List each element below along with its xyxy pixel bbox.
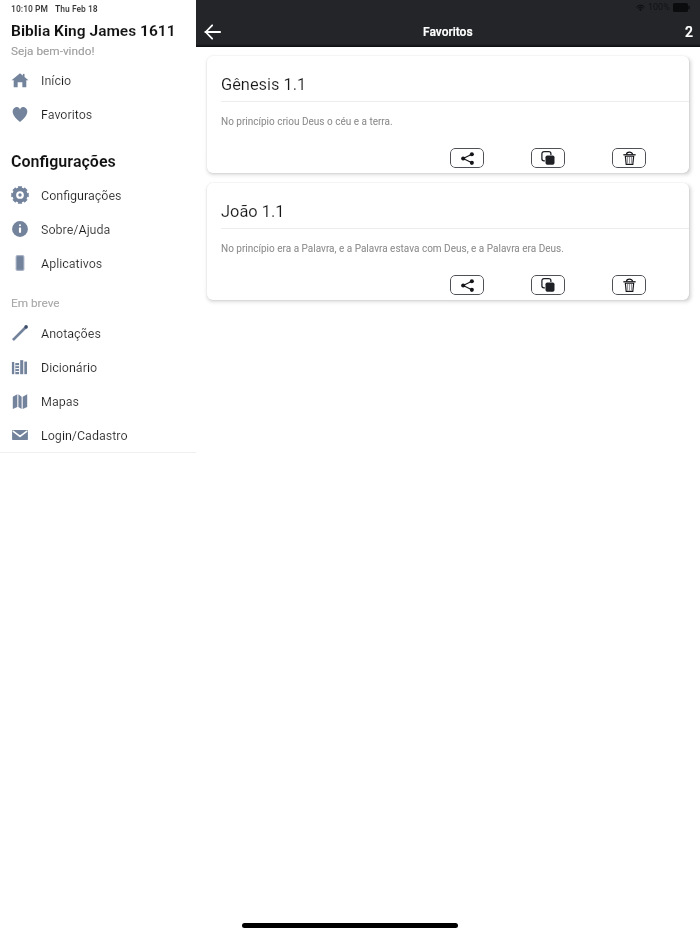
staticText: 10:10 PM xyxy=(11,4,48,14)
staticText: Anotações xyxy=(41,326,101,341)
staticText: 100% xyxy=(648,2,670,13)
staticText: No princípio criou Deus o céu e a terra. xyxy=(221,116,393,128)
button[interactable]: Sobre/Ajuda xyxy=(0,212,196,246)
staticText: Favoritos xyxy=(423,25,473,39)
button[interactable]: Login/Cadastro xyxy=(0,418,196,452)
staticText: Mapas xyxy=(41,394,79,409)
button[interactable]: Anotações xyxy=(0,316,196,350)
button[interactable]: Mapas xyxy=(0,384,196,418)
staticText: Início xyxy=(41,73,72,88)
button[interactable]: Configurações xyxy=(0,178,196,212)
button[interactable]: Copy xyxy=(531,275,565,295)
button[interactable]: Delete xyxy=(612,275,646,295)
staticText: Biblia King James 1611 xyxy=(11,22,176,40)
button[interactable]: Dicionário xyxy=(0,350,196,384)
staticText: 2 xyxy=(685,24,693,40)
staticText: João 1.1 xyxy=(221,202,285,221)
staticText: Sobre/Ajuda xyxy=(41,222,111,237)
button[interactable]: Share xyxy=(450,275,484,295)
staticText: Thu Feb 18 xyxy=(55,4,98,14)
button[interactable]: Delete xyxy=(612,148,646,168)
staticText: Aplicativos xyxy=(41,256,103,271)
button[interactable]: Favoritos xyxy=(0,97,196,131)
staticText: Configurações xyxy=(11,152,116,171)
staticText: Login/Cadastro xyxy=(41,428,128,443)
staticText: Dicionário xyxy=(41,360,98,375)
button[interactable]: Início xyxy=(0,63,196,97)
button[interactable]: Copy xyxy=(531,148,565,168)
staticText: Configurações xyxy=(41,188,122,203)
staticText: Favoritos xyxy=(41,107,93,122)
staticText: No princípio era a Palavra, e a Palavra … xyxy=(221,243,564,255)
button[interactable]: Back xyxy=(196,17,228,47)
staticText: Gênesis 1.1 xyxy=(221,75,307,94)
button[interactable]: Aplicativos xyxy=(0,246,196,280)
staticText: Seja bem-vindo! xyxy=(11,44,95,58)
button[interactable]: Share xyxy=(450,148,484,168)
staticText: Em breve xyxy=(11,296,60,310)
